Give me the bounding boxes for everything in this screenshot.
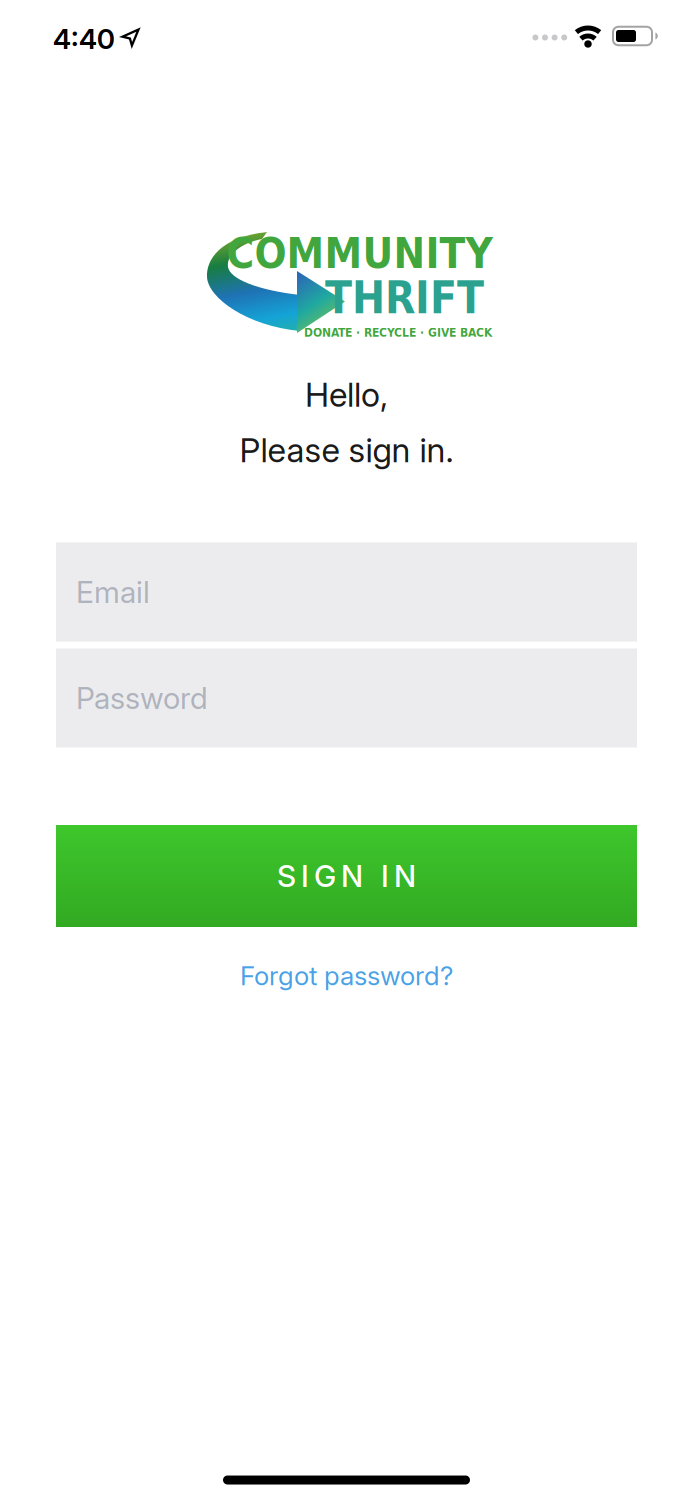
- staticText: Email: [76, 574, 150, 610]
- staticText: Please sign in.: [239, 430, 453, 470]
- staticText: Password: [76, 680, 208, 716]
- staticText: Forgot password?: [240, 960, 453, 991]
- button[interactable]: Password: [56, 648, 637, 747]
- button[interactable]: SIGN IN: [56, 825, 637, 927]
- staticText: 4:40: [53, 22, 115, 56]
- staticText: SIGN IN: [277, 858, 416, 894]
- staticText: DONATE · RECYCLE · GIVE BACK: [304, 325, 492, 339]
- staticText: COMMUNITY: [226, 229, 492, 278]
- staticText: THRIFT: [325, 272, 484, 324]
- button[interactable]: Forgot password?: [240, 960, 453, 991]
- button[interactable]: Email: [56, 542, 637, 641]
- staticText: Hello,: [305, 374, 388, 415]
